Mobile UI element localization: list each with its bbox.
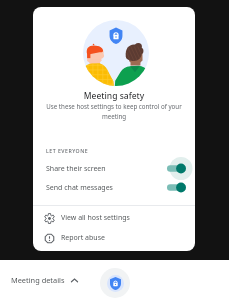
staticText: Use these host settings to keep control …: [46, 102, 182, 121]
staticText: Report abuse: [61, 233, 105, 243]
staticText: Meeting details: [11, 275, 65, 285]
button[interactable]: Send chat messages: [33, 177, 195, 198]
button[interactable]: Report abuse: [33, 228, 195, 248]
staticText: View all host settings: [61, 213, 130, 223]
staticText: Send chat messages: [46, 183, 113, 193]
button[interactable]: Share their screen: [33, 158, 195, 179]
button[interactable]: Meeting details: [8, 270, 82, 290]
staticText: LET EVERYONE: [46, 147, 89, 154]
button[interactable]: View all host settings: [33, 208, 195, 228]
staticText: Meeting safety: [33, 90, 195, 102]
button[interactable]: Meeting safety: [100, 268, 130, 298]
staticText: Share their screen: [46, 164, 106, 174]
